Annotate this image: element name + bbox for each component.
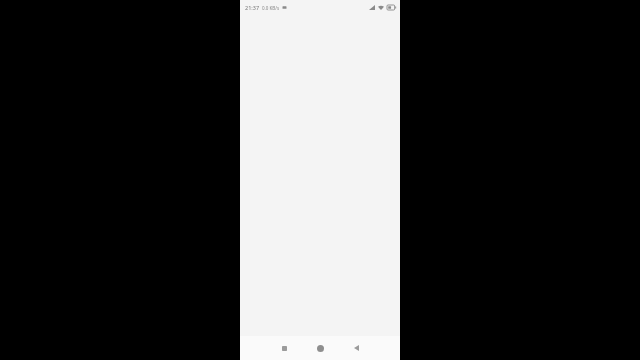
staticText: 21:37 xyxy=(245,4,260,11)
staticText: 0.0 KB/s xyxy=(262,5,280,11)
button[interactable]: Back xyxy=(338,336,374,360)
button[interactable]: Home xyxy=(302,336,338,360)
button[interactable]: Recent apps xyxy=(266,336,302,360)
